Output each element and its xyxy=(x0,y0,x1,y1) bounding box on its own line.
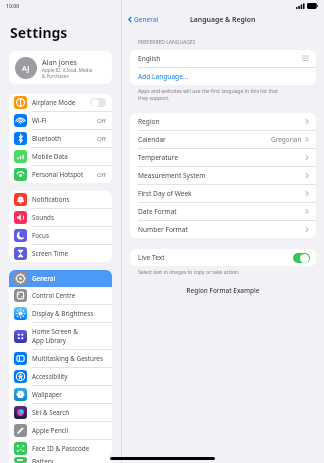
staticText: Multitasking & Gestures xyxy=(32,354,103,363)
button[interactable]: Add Language... xyxy=(130,68,316,85)
staticText: Control Centre xyxy=(32,291,76,300)
button[interactable]: Date Format xyxy=(130,203,316,221)
staticText: Face ID & Passcode xyxy=(32,444,90,453)
button[interactable]: Region xyxy=(130,113,316,131)
staticText: Temperature xyxy=(138,153,178,162)
button[interactable]: Personal Hotspot xyxy=(9,166,112,183)
staticText: Apple ID, iCloud, Media xyxy=(42,67,93,73)
staticText: Off xyxy=(97,171,106,179)
staticText: Notifications xyxy=(32,195,70,204)
staticText: Live Text xyxy=(138,253,165,262)
staticText: Measurement System xyxy=(138,171,206,180)
staticText: Wi-Fi xyxy=(32,116,47,125)
button[interactable]: Screen Time xyxy=(9,245,112,262)
button[interactable]: General xyxy=(9,270,112,287)
button[interactable]: Mobile Data xyxy=(9,148,112,166)
staticText: Add Language... xyxy=(138,72,189,81)
button[interactable]: First Day of Week xyxy=(130,185,316,203)
staticText: Select text in images to copy or take ac… xyxy=(138,269,240,276)
button[interactable]: Wallpaper xyxy=(9,386,112,404)
button[interactable]: Accessibility xyxy=(9,368,112,386)
button[interactable]: Control Centre xyxy=(9,287,112,305)
staticText: Language & Region xyxy=(190,15,256,24)
staticText: General xyxy=(134,15,159,24)
staticText: Bluetooth xyxy=(32,134,62,143)
button[interactable]: AJ xyxy=(9,51,112,84)
staticText: Home Screen & xyxy=(32,327,78,336)
staticText: Screen Time xyxy=(32,249,69,258)
button[interactable]: Apple Pencil xyxy=(9,422,112,440)
staticText: Siri & Search xyxy=(32,408,70,417)
button[interactable]: Multitasking & Gestures xyxy=(9,350,112,368)
button[interactable]: Airplane Mode xyxy=(9,94,112,112)
staticText: Off xyxy=(97,135,106,143)
button[interactable]: Temperature xyxy=(130,149,316,167)
staticText: they support. xyxy=(138,95,170,102)
staticText: Region xyxy=(138,117,160,126)
staticText: First Day of Week xyxy=(138,189,192,198)
button[interactable]: Home Screen & xyxy=(9,323,112,350)
button[interactable] xyxy=(90,98,106,107)
staticText: Region Format Example xyxy=(122,286,324,295)
button[interactable]: General xyxy=(126,13,161,26)
staticText: Focus xyxy=(32,231,50,240)
staticText: Apple Pencil xyxy=(32,426,69,435)
button[interactable]: Face ID & Passcode xyxy=(9,440,112,457)
staticText: Mobile Data xyxy=(32,152,68,161)
staticText: Personal Hotspot xyxy=(32,170,84,179)
staticText: PREFERRED LANGUAGES xyxy=(138,39,196,46)
staticText: General xyxy=(32,274,56,283)
staticText: Sounds xyxy=(32,213,54,222)
staticText: English xyxy=(138,54,161,63)
staticText: Number Format xyxy=(138,225,188,234)
button[interactable]: English xyxy=(130,50,316,67)
button[interactable]: Bluetooth xyxy=(9,130,112,148)
button[interactable]: Battery xyxy=(9,457,112,463)
staticText: Date Format xyxy=(138,207,177,216)
button[interactable]: Sounds xyxy=(9,209,112,227)
button[interactable]: Display & Brightness xyxy=(9,305,112,323)
button[interactable]: Wi-Fi xyxy=(9,112,112,130)
button[interactable]: Siri & Search xyxy=(9,404,112,422)
staticText: Battery xyxy=(32,457,54,463)
button[interactable]: Live Text xyxy=(130,249,316,266)
staticText: Gregorian xyxy=(271,135,302,144)
staticText: App Library xyxy=(32,336,67,345)
button[interactable]: Measurement System xyxy=(130,167,316,185)
button[interactable]: Focus xyxy=(9,227,112,245)
staticText: 10:00 xyxy=(6,2,20,9)
staticText: Apps and websites will use the first lan… xyxy=(138,88,278,95)
staticText: Alan Jones xyxy=(42,57,78,67)
staticText: Display & Brightness xyxy=(32,309,94,318)
button[interactable]: Number Format xyxy=(130,221,316,238)
staticText: Off xyxy=(97,117,106,125)
staticText: Settings xyxy=(10,23,68,42)
staticText: Accessibility xyxy=(32,372,68,381)
button[interactable]: Notifications xyxy=(9,191,112,209)
staticText: AJ xyxy=(22,63,30,73)
staticText: Calendar xyxy=(138,135,166,144)
staticText: Wallpaper xyxy=(32,390,62,399)
button[interactable]: Calendar xyxy=(130,131,316,149)
button[interactable] xyxy=(293,253,310,263)
other: Reorder xyxy=(302,56,309,61)
staticText: & Purchases xyxy=(42,73,69,79)
staticText: Airplane Mode xyxy=(32,98,76,107)
